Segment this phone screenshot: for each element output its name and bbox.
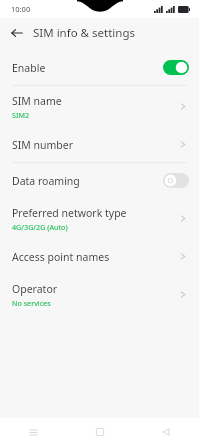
staticText: Access point names [12,250,110,264]
staticText: SIM2 [12,110,30,120]
button[interactable]: Recents [0,418,67,446]
staticText: Data roaming [12,174,80,188]
button[interactable]: Preferred network type [0,198,199,239]
button[interactable]: Enable [0,50,199,85]
button[interactable]: Data roaming [0,163,199,198]
button[interactable]: Back [7,23,27,43]
staticText: SIM number [12,138,74,152]
button[interactable]: SIM number [0,127,199,162]
button[interactable]: Operator [0,274,199,315]
button[interactable]: Access point names [0,239,199,274]
staticText: 10:00 [11,4,31,14]
staticText: Preferred network type [12,206,127,220]
staticText: No services [12,298,51,308]
staticText: SIM info & settings [33,25,135,41]
staticText: Enable [12,61,46,75]
button[interactable]: SIM name [0,86,199,127]
staticText: SIM name [12,94,62,108]
button[interactable]: Toggle on [163,60,189,75]
staticText: Operator [12,282,58,296]
staticText: 4G/3G/2G (Auto) [12,222,68,232]
button[interactable]: Toggle off [163,173,189,188]
button[interactable]: Home [67,418,133,446]
button[interactable]: Back [133,418,199,446]
